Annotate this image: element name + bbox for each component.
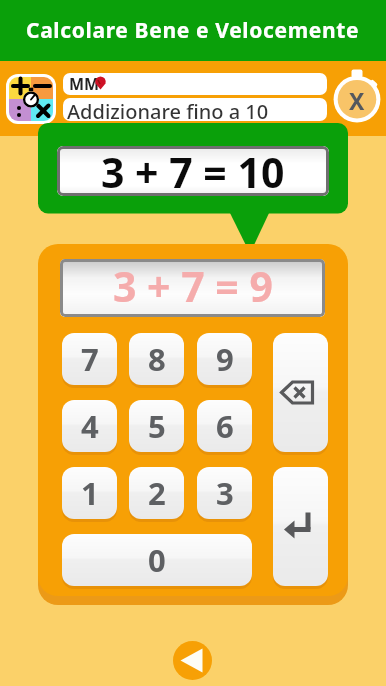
staticText: 1 <box>81 472 99 514</box>
button[interactable]: X <box>333 65 383 125</box>
staticText: 3 <box>216 472 234 514</box>
button[interactable]: 3 <box>197 467 252 519</box>
button[interactable] <box>173 641 212 680</box>
staticText: MM <box>69 73 100 95</box>
staticText: 4 <box>81 405 99 447</box>
button[interactable]: Addizionare fino a 10 <box>63 98 327 121</box>
staticText: Calcolare Bene e Velocemente <box>26 16 360 45</box>
button[interactable] <box>273 467 328 586</box>
button[interactable]: 6 <box>197 400 252 452</box>
button[interactable]: 9 <box>197 333 252 385</box>
staticText: 7 <box>81 338 99 380</box>
button[interactable] <box>273 333 328 452</box>
staticText: X <box>349 85 365 116</box>
staticText: 3 + 7 = 10 <box>101 146 285 194</box>
button[interactable]: MM <box>63 73 327 95</box>
staticText: 2 <box>148 472 166 514</box>
button[interactable]: 5 <box>129 400 184 452</box>
button[interactable]: 8 <box>129 333 184 385</box>
button[interactable]: 7 <box>62 333 117 385</box>
staticText: 0 <box>148 539 166 581</box>
staticText: Addizionare fino a 10 <box>67 98 269 121</box>
staticText: 3 + 7 = 9 <box>113 259 273 314</box>
button[interactable]: 4 <box>62 400 117 452</box>
button[interactable]: 0 <box>62 534 252 586</box>
staticText: 9 <box>216 338 234 380</box>
button[interactable] <box>6 74 56 124</box>
staticText: 8 <box>148 338 166 380</box>
button[interactable]: 1 <box>62 467 117 519</box>
staticText: 5 <box>148 405 166 447</box>
button[interactable]: 2 <box>129 467 184 519</box>
staticText: 6 <box>216 405 234 447</box>
